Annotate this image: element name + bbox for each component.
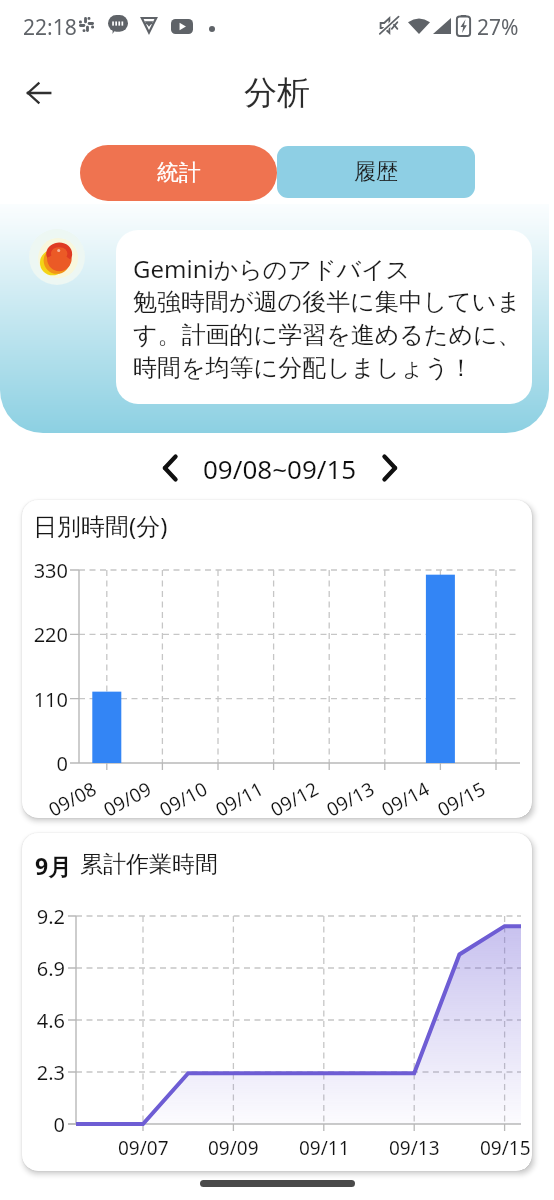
- staticText: 09/12: [266, 776, 323, 818]
- staticText: 09/09: [208, 1135, 259, 1161]
- button[interactable]: Back: [15, 69, 63, 117]
- staticText: 09/11: [299, 1135, 350, 1161]
- staticText: 09/15: [433, 776, 490, 818]
- staticText: 09/08~09/15: [203, 451, 357, 486]
- staticText: 220: [33, 621, 68, 648]
- staticText: 累計作業時間: [80, 850, 218, 879]
- button[interactable]: 履歴: [277, 146, 475, 198]
- staticText: 2.3: [36, 1059, 65, 1086]
- button[interactable]: 統計: [80, 145, 277, 201]
- staticText: 09/14: [377, 776, 434, 818]
- staticText: 9月: [35, 850, 72, 881]
- staticText: 9.2: [36, 903, 65, 930]
- button[interactable]: Next week: [369, 447, 411, 489]
- staticText: 6.9: [36, 955, 65, 982]
- staticText: 勉強時間が週の後半に集中していま: [133, 287, 521, 317]
- staticText: 履歴: [354, 158, 398, 186]
- staticText: 330: [33, 557, 68, 584]
- staticText: 09/07: [118, 1135, 169, 1161]
- staticText: 09/13: [389, 1135, 440, 1161]
- staticText: 09/10: [155, 776, 212, 818]
- staticText: 09/09: [99, 776, 156, 818]
- staticText: す。計画的に学習を進めるために、: [133, 320, 522, 350]
- staticText: 09/13: [322, 776, 379, 818]
- staticText: 110: [33, 686, 68, 713]
- staticText: 0: [56, 750, 68, 777]
- staticText: 日別時間(分): [33, 509, 168, 542]
- staticText: 統計: [157, 159, 201, 187]
- staticText: 4.6: [36, 1007, 65, 1034]
- staticText: 時間を均等に分配しましょう！: [133, 353, 473, 383]
- staticText: Geminiからのアドバイス: [133, 252, 411, 285]
- staticText: 27%: [477, 13, 519, 42]
- button[interactable]: Previous week: [149, 447, 191, 489]
- staticText: 09/08: [44, 776, 101, 818]
- staticText: 分析: [244, 72, 310, 114]
- staticText: 22:18: [23, 13, 77, 42]
- staticText: 0: [53, 1111, 65, 1138]
- staticText: 09/11: [211, 776, 268, 818]
- staticText: 09/15: [480, 1135, 531, 1161]
